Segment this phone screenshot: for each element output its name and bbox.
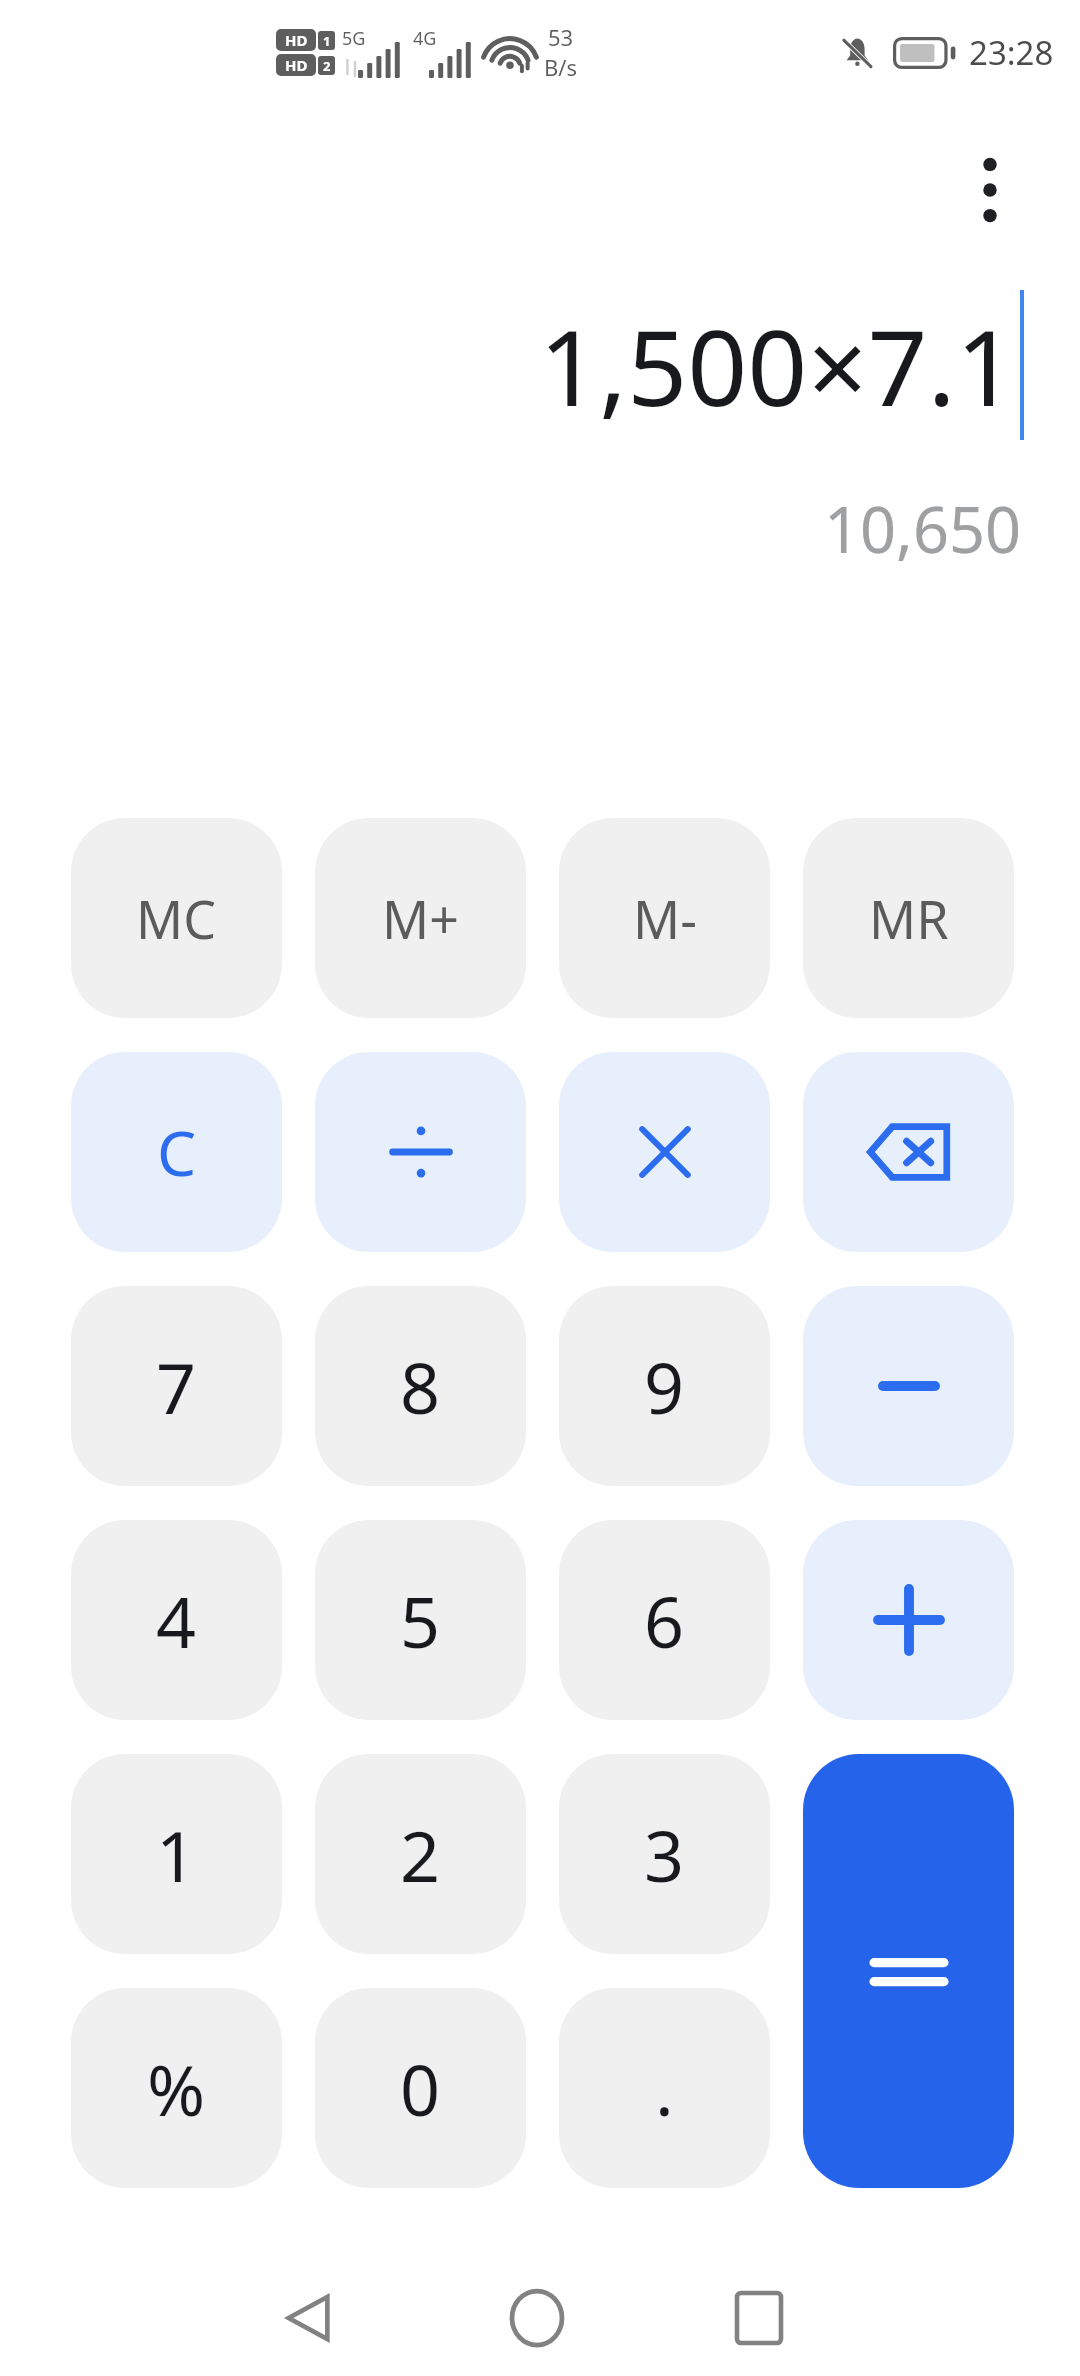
staticText: 8 <box>400 1339 441 1434</box>
staticText: HD <box>285 30 308 50</box>
button[interactable]: 3 <box>559 1754 770 1954</box>
button[interactable]: Plus <box>803 1520 1014 1720</box>
button[interactable]: 8 <box>315 1286 526 1486</box>
button[interactable]: Back <box>252 2262 364 2374</box>
staticText: M+ <box>382 883 459 954</box>
button[interactable]: MC <box>71 818 282 1018</box>
button[interactable]: Home <box>481 2262 593 2374</box>
button[interactable]: Recent apps <box>703 2262 815 2374</box>
button[interactable]: More options <box>946 146 1034 234</box>
staticText: 1 <box>323 32 331 50</box>
staticText: 2 <box>400 1807 441 1902</box>
button[interactable]: 1 <box>71 1754 282 1954</box>
button[interactable]: M+ <box>315 818 526 1018</box>
button[interactable]: Backspace <box>803 1052 1014 1252</box>
button[interactable]: Equals <box>803 1754 1014 2188</box>
staticText: % <box>147 2041 206 2136</box>
staticText: 7 <box>156 1339 197 1434</box>
button[interactable]: 9 <box>559 1286 770 1486</box>
staticText: B/s <box>544 52 578 82</box>
staticText: 23:28 <box>969 30 1054 75</box>
staticText: 1,500×7.1 <box>539 294 1016 437</box>
button[interactable]: 6 <box>559 1520 770 1720</box>
staticText: 2 <box>323 57 331 75</box>
staticText: MC <box>136 883 217 954</box>
button[interactable]: 5 <box>315 1520 526 1720</box>
button[interactable]: Clear <box>71 1052 282 1252</box>
staticText: MR <box>869 883 949 954</box>
staticText: 5 <box>400 1573 441 1668</box>
staticText: 1 <box>156 1807 197 1902</box>
button[interactable]: 2 <box>315 1754 526 1954</box>
button[interactable]: MR <box>803 818 1014 1018</box>
staticText: 9 <box>644 1339 685 1434</box>
staticText: 3 <box>644 1807 685 1902</box>
staticText: 6 <box>644 1573 685 1668</box>
staticText: HD <box>285 55 308 75</box>
button[interactable]: . <box>559 1988 770 2188</box>
staticText: 5G <box>342 26 366 51</box>
button[interactable]: % <box>71 1988 282 2188</box>
button[interactable]: 0 <box>315 1988 526 2188</box>
staticText: . <box>655 2041 674 2136</box>
button[interactable]: Minus <box>803 1286 1014 1486</box>
staticText: C <box>157 1110 197 1194</box>
staticText: 4G <box>413 26 437 51</box>
button[interactable]: M- <box>559 818 770 1018</box>
button[interactable]: Multiply <box>559 1052 770 1252</box>
staticText: 0 <box>400 2041 441 2136</box>
button[interactable]: Divide <box>315 1052 526 1252</box>
staticText: 10,650 <box>824 486 1022 572</box>
staticText: M- <box>633 883 697 954</box>
button[interactable]: 4 <box>71 1520 282 1720</box>
staticText: 53 <box>548 22 574 52</box>
button[interactable]: 7 <box>71 1286 282 1486</box>
staticText: 4 <box>156 1573 197 1668</box>
